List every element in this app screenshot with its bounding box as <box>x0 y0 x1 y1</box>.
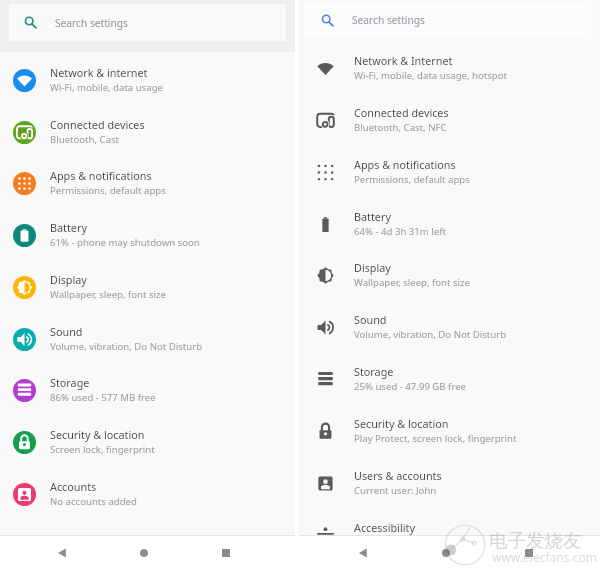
staticText: No accounts added <box>50 495 137 508</box>
button[interactable]: Security & location <box>0 418 295 469</box>
staticText: Storage <box>50 375 90 390</box>
staticText: Screen lock, fingerprint <box>50 443 155 456</box>
staticText: Network & internet <box>50 65 148 80</box>
staticText: Permissions, default apps <box>354 173 470 186</box>
staticText: Users & accounts <box>354 468 442 483</box>
button[interactable]: Battery <box>0 211 295 262</box>
staticText: Apps & notifications <box>50 168 152 183</box>
button[interactable]: Sound <box>0 315 295 366</box>
button[interactable]: Recents <box>210 537 242 569</box>
button[interactable]: Display <box>299 251 600 302</box>
button[interactable]: Storage <box>299 355 600 406</box>
staticText: Accounts <box>50 479 97 494</box>
staticText: Bluetooth, Cast <box>50 133 120 146</box>
staticText: 61% - phone may shutdown soon <box>50 236 200 249</box>
staticText: 25% used - 47.99 GB free <box>354 380 466 393</box>
staticText: Permissions, default apps <box>50 184 166 197</box>
button[interactable]: Apps & notifications <box>0 159 295 210</box>
staticText: www.elecfans.com <box>492 549 597 565</box>
staticText: Search settings <box>55 16 128 30</box>
button[interactable]: Display <box>0 263 295 314</box>
button[interactable]: Search settings <box>304 2 591 38</box>
staticText: Battery <box>354 209 391 224</box>
button[interactable]: Back <box>347 537 379 569</box>
staticText: Current user: John <box>354 484 437 497</box>
staticText: Storage <box>354 364 394 379</box>
staticText: Search settings <box>352 13 425 27</box>
button[interactable]: Connected devices <box>299 96 600 147</box>
staticText: Wallpaper, sleep, font size <box>354 276 470 289</box>
staticText: Battery <box>50 220 87 235</box>
staticText: 电子发烧友 <box>489 529 582 552</box>
staticText: Apps & notifications <box>354 157 456 172</box>
staticText: Bluetooth, Cast, NFC <box>354 121 447 134</box>
staticText: Play Protect, screen lock, fingerprint <box>354 432 517 445</box>
button[interactable]: Apps & notifications <box>299 148 600 199</box>
staticText: Volume, vibration, Do Not Disturb <box>354 328 507 341</box>
staticText: Connected devices <box>50 117 145 132</box>
staticText: Network & Internet <box>354 53 453 68</box>
staticText: Wi-Fi, mobile, data usage <box>50 81 163 94</box>
button[interactable]: Sound <box>299 303 600 354</box>
button[interactable]: Users & accounts <box>299 459 600 510</box>
staticText: Display <box>50 272 87 287</box>
button[interactable]: Back <box>46 537 78 569</box>
button[interactable]: Home <box>128 537 160 569</box>
staticText: Display <box>354 260 391 275</box>
staticText: Sound <box>354 312 387 327</box>
staticText: 86% used - 577 MB free <box>50 391 156 404</box>
button[interactable]: Network & internet <box>0 56 295 107</box>
button[interactable]: Security & location <box>299 407 600 458</box>
button[interactable]: Network & Internet <box>299 44 600 95</box>
staticText: Sound <box>50 324 83 339</box>
button[interactable]: Home <box>430 537 462 569</box>
staticText: Accessibility <box>354 520 415 535</box>
staticText: Security & location <box>50 427 145 442</box>
button[interactable]: Recents <box>513 537 545 569</box>
staticText: Wallpaper, sleep, font size <box>50 288 166 301</box>
staticText: Security & location <box>354 416 449 431</box>
staticText: Wi-Fi, mobile, data usage, hotspot <box>354 69 507 82</box>
button[interactable]: Accounts <box>0 470 295 521</box>
button[interactable]: Connected devices <box>0 108 295 159</box>
button[interactable]: Battery <box>299 200 600 251</box>
button[interactable]: Storage <box>0 366 295 417</box>
staticText: Volume, vibration, Do Not Disturb <box>50 340 203 353</box>
button[interactable]: Search settings <box>9 4 286 41</box>
button[interactable]: Accessibility <box>299 511 600 562</box>
staticText: Connected devices <box>354 105 449 120</box>
staticText: 64% - 4d 3h 31m left <box>354 225 446 238</box>
